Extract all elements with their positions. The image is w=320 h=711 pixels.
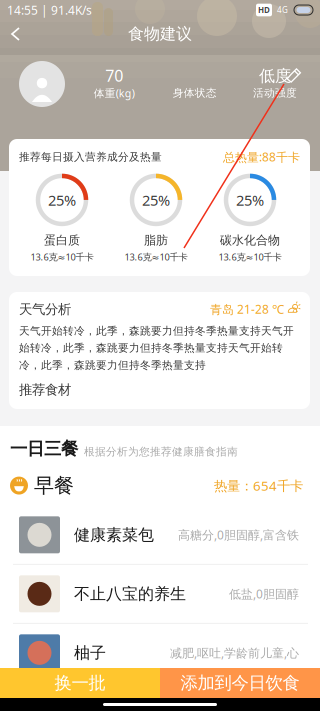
- staticText: 25%: [142, 190, 170, 210]
- staticText: 青岛 21-28 ℃: [210, 301, 284, 317]
- staticText: 柚子: [74, 643, 106, 663]
- staticText: 根据分析为您推荐健康膳食指南: [84, 445, 238, 458]
- staticText: 70: [105, 65, 123, 86]
- staticText: 活动强度: [253, 86, 297, 99]
- staticText: 不止八宝的养生: [74, 584, 186, 604]
- staticText: 13.6克≈10千卡: [30, 251, 93, 263]
- staticText: 脂肪: [144, 233, 168, 248]
- staticText: 13.6克≈10千卡: [124, 251, 187, 263]
- button[interactable]: 不止八宝的养生: [11, 565, 310, 624]
- staticText: 一日三餐: [10, 438, 78, 459]
- staticText: 碳水化合物: [220, 233, 280, 248]
- staticText: 高糖分,0胆固醇,富含铁: [178, 527, 299, 543]
- staticText: 换一批: [54, 672, 105, 694]
- staticText: 身体状态: [173, 86, 217, 99]
- staticText: 25%: [48, 190, 76, 210]
- staticText: 天气开始转冷，此季，森跳要力但持冬季热量支持天气开始转冷，此季，森跳要力但持冬季…: [19, 324, 294, 372]
- button[interactable]: 健康素菜包: [11, 506, 310, 565]
- staticText: 14:55 | 91.4K/s: [7, 2, 92, 18]
- button[interactable]: 换一批: [0, 668, 160, 698]
- staticText: 减肥,呕吐,学龄前儿童,心: [170, 645, 299, 661]
- staticText: 蛋白质: [44, 233, 80, 248]
- staticText: 总热量:88千卡: [223, 149, 300, 165]
- staticText: 25%: [236, 190, 264, 210]
- staticText: 体重(kg): [94, 86, 135, 100]
- button[interactable]: 返回: [0, 20, 31, 48]
- button[interactable]: 添加到今日饮食: [160, 668, 320, 698]
- staticText: 4G: [277, 5, 288, 15]
- staticText: 食物建议: [128, 24, 192, 44]
- button[interactable]: 柚子: [11, 624, 310, 682]
- staticText: HD: [258, 5, 270, 15]
- staticText: 添加到今日饮食: [180, 672, 299, 694]
- staticText: 天气分析: [19, 301, 71, 317]
- staticText: 推荐食材: [19, 382, 71, 398]
- staticText: 推荐每日摄入营养成分及热量: [19, 150, 162, 163]
- staticText: 低盐,0胆固醇: [229, 586, 299, 602]
- staticText: 热量：654千卡: [214, 477, 303, 494]
- staticText: 13.6克≈10千卡: [218, 251, 281, 263]
- staticText: 早餐: [34, 473, 74, 498]
- staticText: 健康素菜包: [74, 525, 154, 545]
- staticText: 低度: [259, 66, 291, 86]
